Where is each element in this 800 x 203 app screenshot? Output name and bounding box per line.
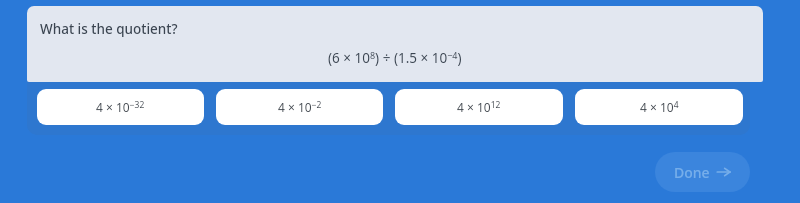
staticText: 4 × 1012 <box>457 99 501 115</box>
staticText: 4 × 10−32 <box>96 99 145 115</box>
button[interactable]: 4 × 10−2 <box>216 89 383 125</box>
button[interactable]: 4 × 104 <box>575 89 743 125</box>
other: Done, next <box>717 165 731 179</box>
button[interactable]: Done <box>655 152 750 192</box>
staticText: 4 × 104 <box>640 99 679 115</box>
staticText: 4 × 10−2 <box>278 99 322 115</box>
staticText: Done <box>674 163 710 182</box>
button[interactable]: 4 × 10−32 <box>37 89 204 125</box>
staticText: (6 × 108) ÷ (1.5 × 10−4) <box>328 49 462 67</box>
button[interactable]: 4 × 1012 <box>395 89 563 125</box>
staticText: What is the quotient? <box>40 20 178 38</box>
